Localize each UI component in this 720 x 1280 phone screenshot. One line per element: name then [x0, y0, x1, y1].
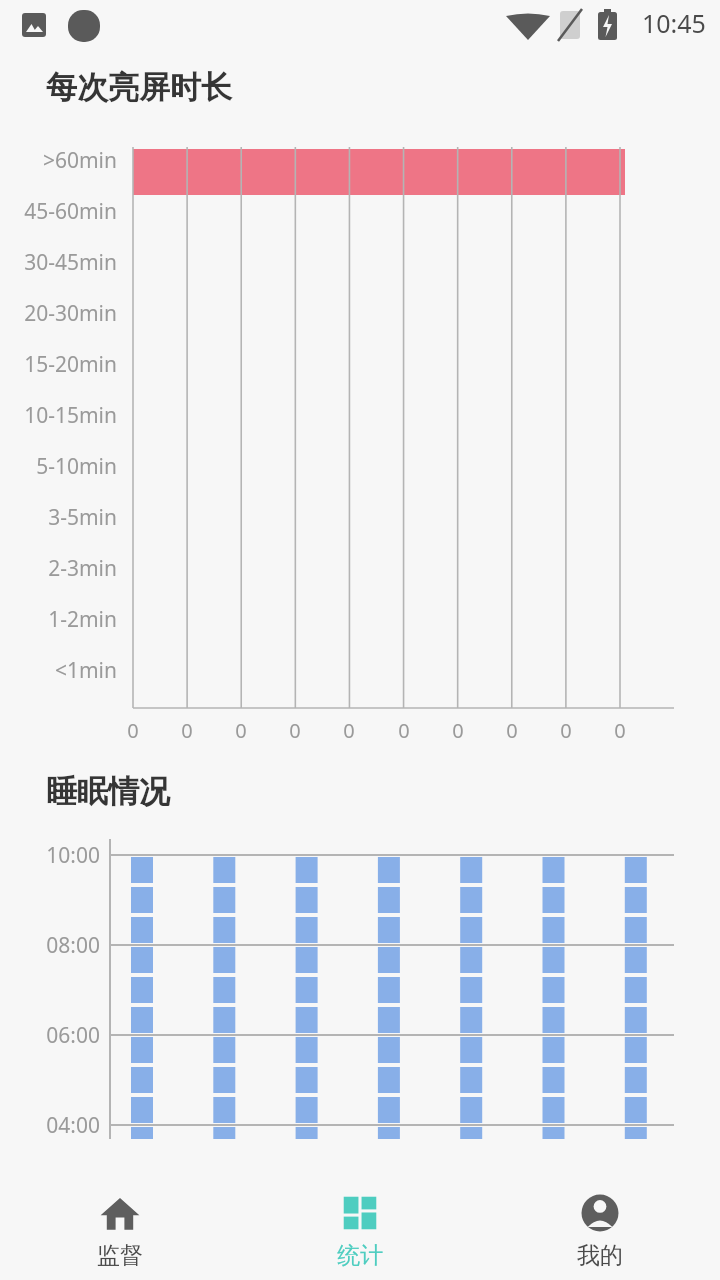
staticText: 10:45 [642, 6, 706, 40]
staticText: 06:00 [0, 1021, 100, 1050]
staticText: 1-2min [0, 605, 117, 634]
staticText: >60min [0, 146, 117, 175]
staticText: 0 [559, 717, 573, 744]
staticText: 0 [613, 717, 627, 744]
staticText: 睡眠情况 [46, 772, 170, 811]
staticText: 5-10min [0, 452, 117, 481]
staticText: 监督 [97, 1241, 143, 1270]
staticText: 0 [397, 717, 411, 744]
button[interactable]: 统计 [240, 1180, 480, 1280]
staticText: 0 [451, 717, 465, 744]
staticText: 统计 [337, 1241, 383, 1270]
staticText: 15-20min [0, 350, 117, 379]
staticText: 20-30min [0, 299, 117, 328]
staticText: 0 [288, 717, 302, 744]
button[interactable]: 监督 [0, 1180, 240, 1280]
staticText: 我的 [577, 1241, 623, 1270]
staticText: 30-45min [0, 248, 117, 277]
staticText: 0 [180, 717, 194, 744]
staticText: 3-5min [0, 503, 117, 532]
staticText: 0 [234, 717, 248, 744]
staticText: 每次亮屏时长 [46, 68, 232, 107]
staticText: 2-3min [0, 554, 117, 583]
staticText: 0 [505, 717, 519, 744]
staticText: 08:00 [0, 931, 100, 960]
staticText: <1min [0, 656, 117, 685]
staticText: 04:00 [0, 1111, 100, 1140]
staticText: 10-15min [0, 401, 117, 430]
button[interactable]: 我的 [480, 1180, 720, 1280]
staticText: 45-60min [0, 197, 117, 226]
staticText: 0 [342, 717, 356, 744]
staticText: 0 [126, 717, 140, 744]
staticText: 10:00 [0, 841, 100, 870]
